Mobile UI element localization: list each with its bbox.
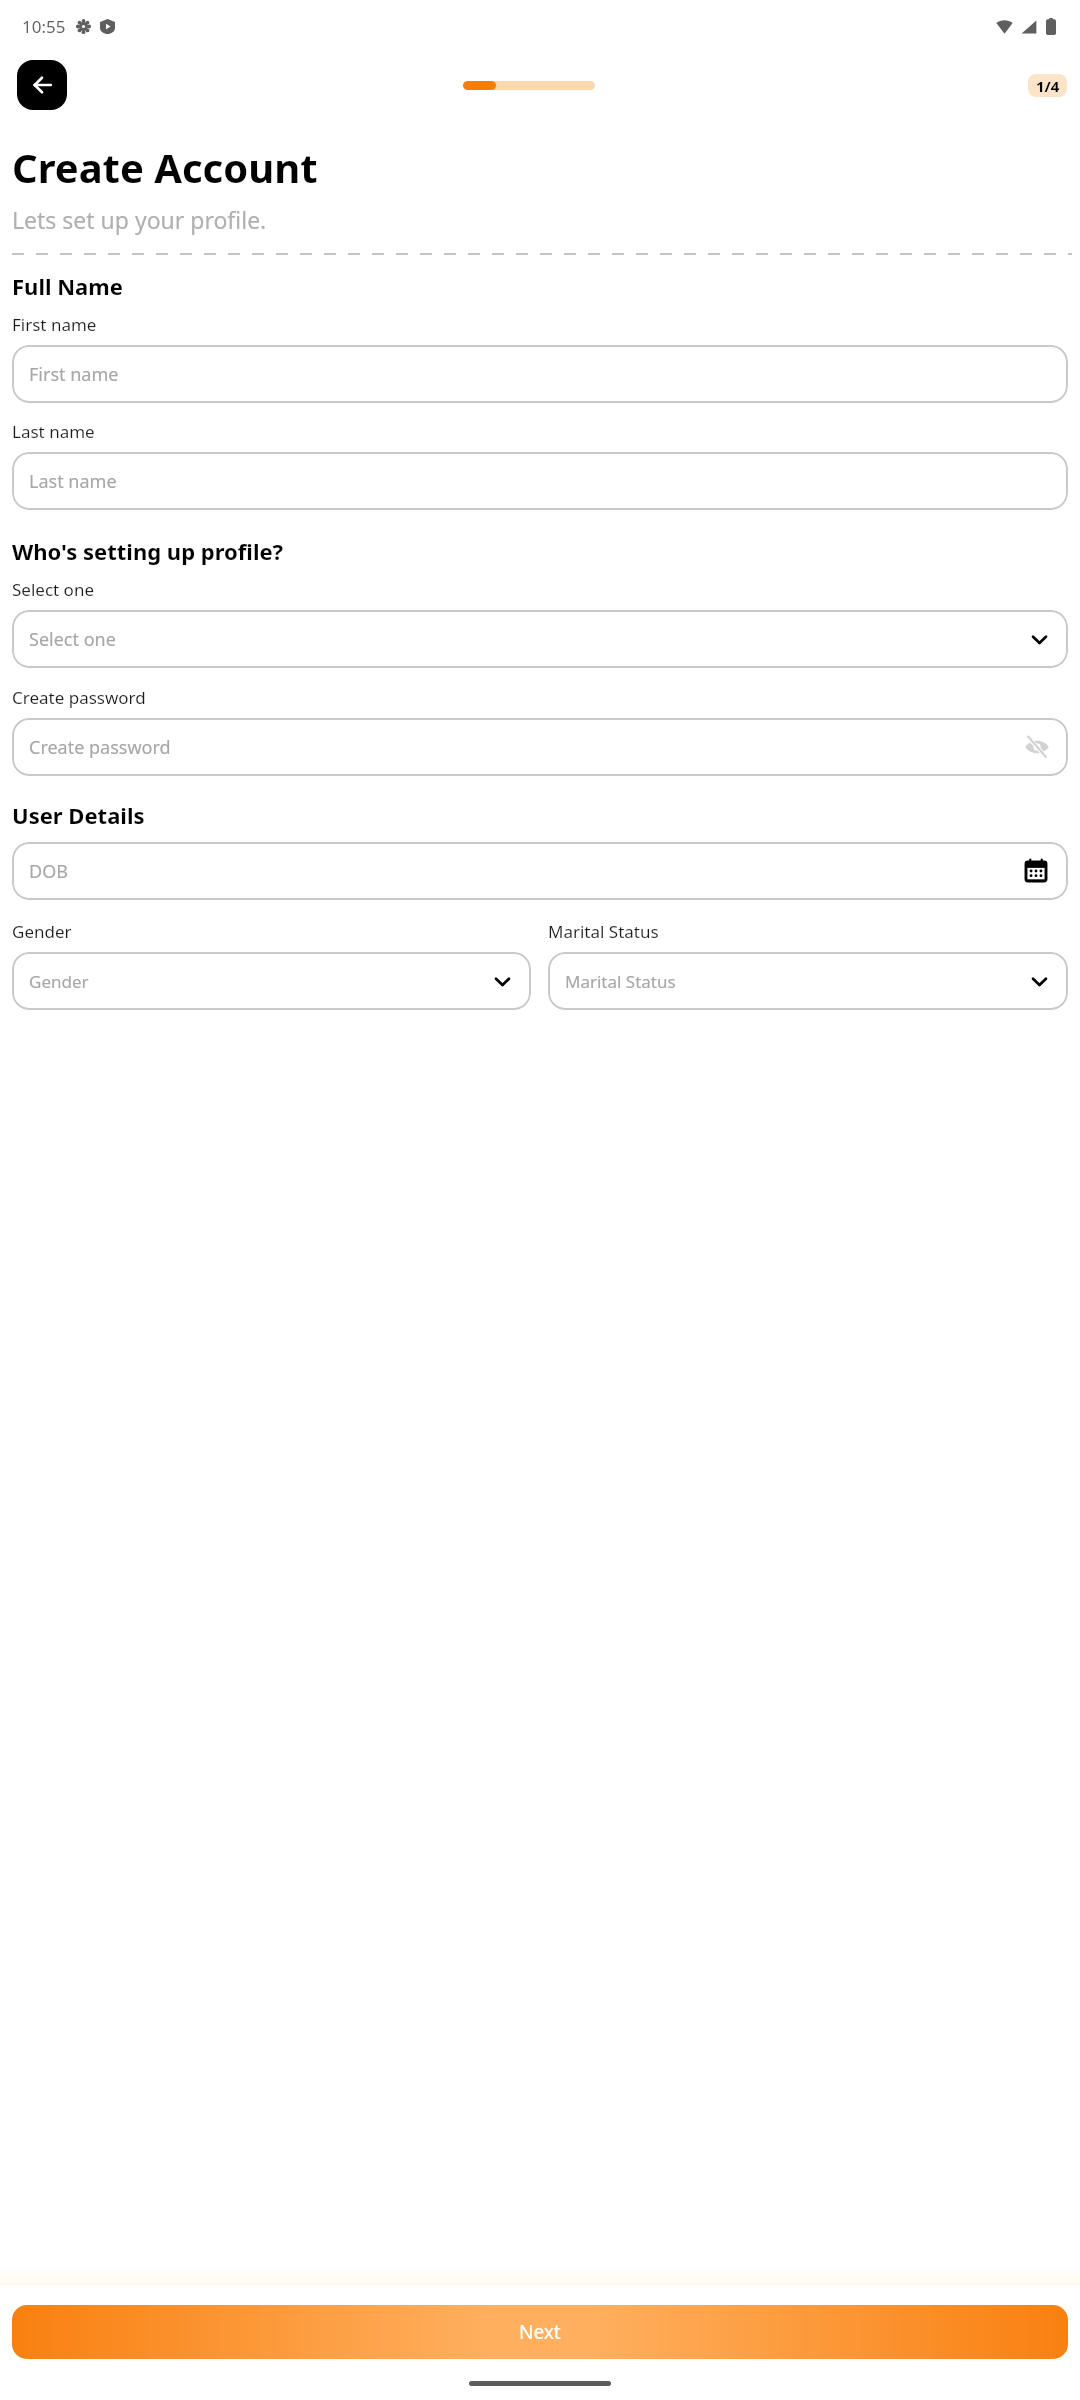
staticText: User Details: [12, 800, 145, 830]
staticText: 10:55: [22, 15, 66, 38]
button[interactable]: Create password: [12, 718, 1068, 776]
staticText: First name: [29, 362, 119, 387]
staticText: Marital Status: [565, 970, 676, 993]
staticText: DOB: [29, 859, 68, 884]
other: Open dropdown: [1028, 970, 1050, 992]
staticText: Select one: [12, 578, 94, 601]
staticText: Create password: [12, 686, 146, 709]
button[interactable]: Marital Status: [548, 952, 1068, 1010]
button[interactable]: Show password: [1022, 732, 1052, 762]
button[interactable]: Pick date: [1020, 855, 1052, 887]
button[interactable]: Back: [17, 60, 67, 110]
staticText: First name: [12, 313, 97, 336]
button[interactable]: First name: [12, 345, 1068, 403]
staticText: Create Account: [12, 140, 318, 194]
staticText: Marital Status: [548, 920, 659, 943]
button[interactable]: Last name: [12, 452, 1068, 510]
staticText: Lets set up your profile.: [12, 204, 267, 235]
other: Open dropdown: [491, 970, 513, 992]
other: Open dropdown: [1028, 628, 1050, 650]
button[interactable]: Next: [12, 2305, 1068, 2359]
button[interactable]: Select one: [12, 610, 1068, 668]
button[interactable]: Gender: [12, 952, 531, 1010]
staticText: Gender: [29, 970, 89, 993]
button[interactable]: DOB: [12, 842, 1068, 900]
staticText: Full Name: [12, 271, 123, 301]
staticText: Create password: [29, 735, 171, 760]
staticText: 1/4: [1036, 76, 1060, 96]
staticText: Who's setting up profile?: [12, 536, 284, 566]
staticText: Last name: [12, 420, 95, 443]
button[interactable]: 1/4: [1028, 74, 1067, 97]
staticText: Next: [519, 2319, 561, 2345]
staticText: Last name: [29, 469, 117, 494]
staticText: Gender: [12, 920, 72, 943]
staticText: Select one: [29, 627, 116, 652]
